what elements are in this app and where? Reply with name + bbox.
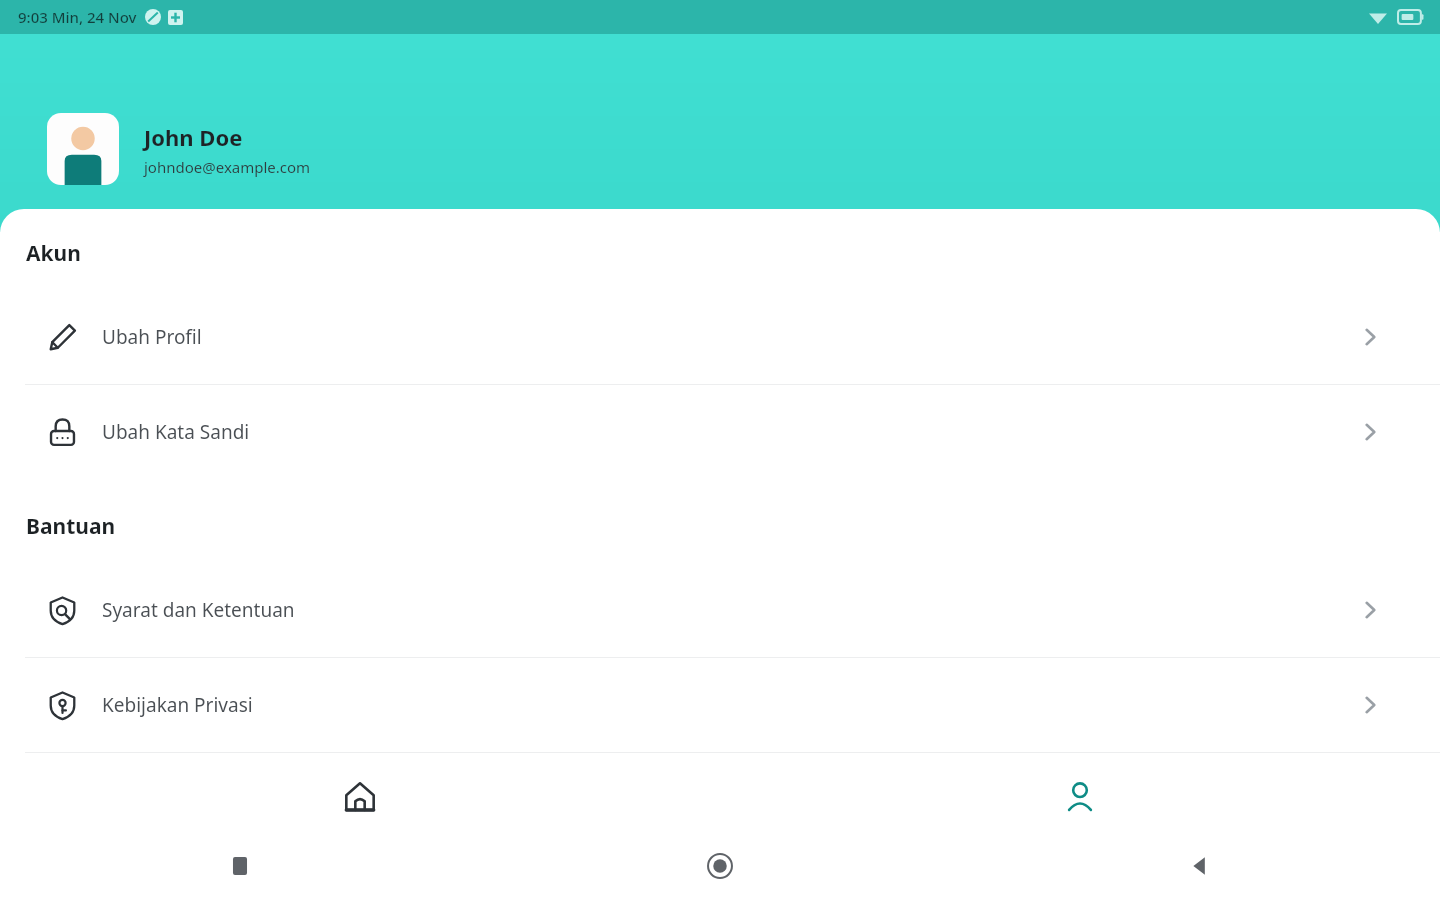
staticText: Bantuan (26, 512, 116, 541)
button[interactable]: Home (0, 763, 720, 831)
button[interactable]: Hapus Akun (0, 753, 1440, 847)
button[interactable]: Ubah Kata Sandi (0, 385, 1440, 479)
button[interactable]: Syarat dan Ketentuan (0, 563, 1440, 657)
button[interactable]: Profile (720, 763, 1440, 831)
staticText: Akun (26, 239, 81, 268)
button[interactable]: Home (480, 831, 960, 900)
staticText: johndoe@example.com (144, 157, 311, 177)
staticText: John Doe (144, 122, 243, 152)
staticText: Syarat dan Ketentuan (102, 597, 1358, 623)
button[interactable]: Ubah Profil (0, 290, 1440, 384)
staticText: Ubah Profil (102, 324, 1358, 350)
button[interactable]: Recent apps (0, 831, 480, 900)
staticText: 9:03 Min, 24 Nov (18, 7, 137, 27)
staticText: Hapus Akun (102, 787, 1358, 813)
staticText: Ubah Kata Sandi (102, 419, 1358, 445)
button[interactable]: Kebijakan Privasi (0, 658, 1440, 752)
staticText: Kebijakan Privasi (102, 692, 1358, 718)
button[interactable]: Back (960, 831, 1440, 900)
